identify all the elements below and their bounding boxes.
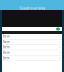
- staticText: >: [59, 56, 61, 60]
- staticText: Item: [3, 56, 9, 60]
- staticText: Item: [3, 51, 9, 54]
- staticText: Item: [3, 35, 9, 38]
- staticText: >: [59, 35, 61, 38]
- staticText: Item: [3, 45, 9, 49]
- staticText: >: [59, 45, 61, 49]
- staticText: >: [59, 40, 61, 44]
- staticText: Good morning: [19, 5, 44, 11]
- staticText: >: [59, 51, 61, 54]
- staticText: Item: [3, 40, 9, 44]
